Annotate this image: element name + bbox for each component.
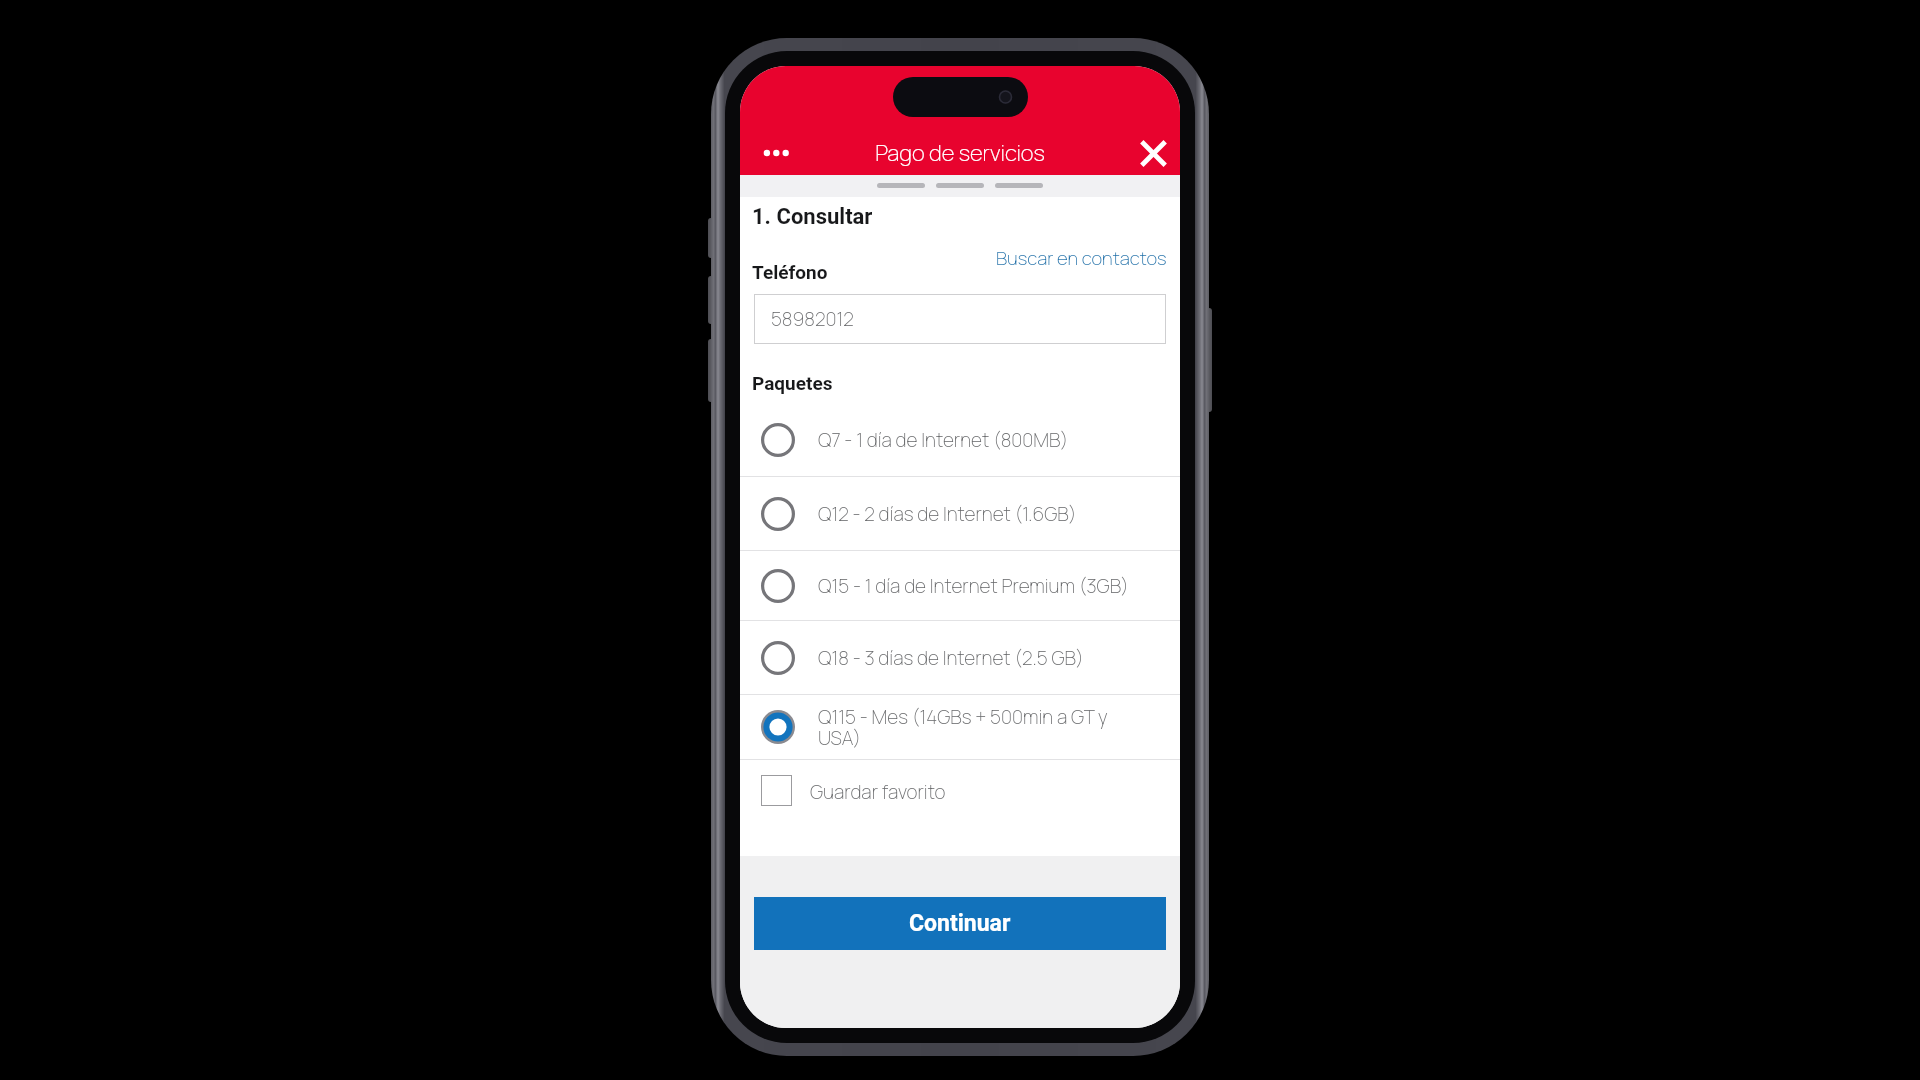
staticText: 58982012 bbox=[771, 306, 854, 332]
staticText: Pago de servicios bbox=[794, 138, 1126, 168]
staticText: Q7 - 1 día de Internet (800MB) bbox=[818, 427, 1136, 453]
staticText: Buscar en contactos bbox=[996, 245, 1167, 270]
button[interactable]: More options bbox=[740, 126, 794, 180]
button[interactable]: 58982012 bbox=[754, 294, 1166, 344]
button[interactable]: Continuar bbox=[754, 897, 1166, 950]
staticText: Paquetes bbox=[752, 372, 833, 394]
button[interactable]: Buscar en contactos bbox=[996, 245, 1167, 270]
staticText: Q12 - 2 días de Internet (1.6GB) bbox=[818, 501, 1136, 527]
staticText: Teléfono bbox=[752, 261, 828, 283]
staticText: Continuar bbox=[909, 910, 1011, 937]
staticText: Q115 - Mes (14GBs + 500min a GT y USA) bbox=[818, 704, 1136, 750]
button[interactable]: Q15 - 1 día de Internet Premium (3GB) bbox=[740, 551, 1180, 620]
staticText: Guardar favorito bbox=[810, 779, 946, 805]
staticText: Q18 - 3 días de Internet (2.5 GB) bbox=[818, 645, 1136, 671]
button[interactable]: Q18 - 3 días de Internet (2.5 GB) bbox=[740, 621, 1180, 694]
button[interactable]: Q115 - Mes (14GBs + 500min a GT y USA) bbox=[740, 695, 1180, 759]
button[interactable]: Guardar favorito bbox=[740, 760, 1180, 856]
staticText: Q15 - 1 día de Internet Premium (3GB) bbox=[818, 573, 1136, 599]
button[interactable]: Q7 - 1 día de Internet (800MB) bbox=[740, 403, 1180, 476]
staticText: 1. Consultar bbox=[752, 204, 873, 230]
button[interactable]: Close bbox=[1126, 126, 1180, 180]
button[interactable]: Q12 - 2 días de Internet (1.6GB) bbox=[740, 477, 1180, 550]
